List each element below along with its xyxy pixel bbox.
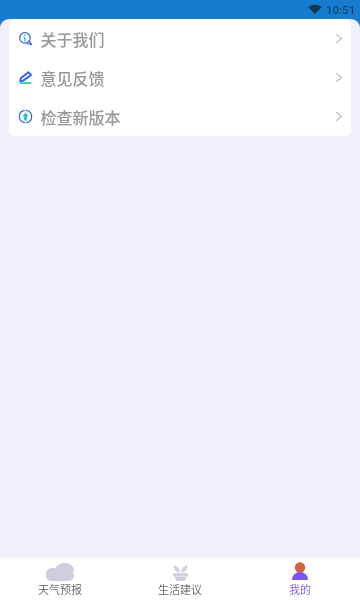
staticText: 生活建议 [158, 581, 202, 597]
button[interactable]: Life tips [120, 559, 240, 597]
button[interactable]: Profile [240, 559, 360, 597]
staticText: 检查新版本 [40, 105, 121, 128]
staticText: 意见反馈 [40, 66, 105, 89]
button[interactable]: Weather forecast [0, 559, 120, 597]
staticText: 我的 [289, 581, 311, 597]
button[interactable]: 关于我们 [9, 19, 351, 58]
staticText: 关于我们 [40, 27, 105, 50]
button[interactable]: 检查新版本 [9, 97, 351, 136]
staticText: 天气预报 [38, 581, 82, 597]
staticText: 10:51 [326, 3, 356, 16]
button[interactable]: 意见反馈 [9, 58, 351, 97]
